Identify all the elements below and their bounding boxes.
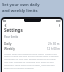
staticText: 2 h 30 m (48, 42, 60, 46)
staticText: Settings (4, 27, 23, 33)
button[interactable]: More options (57, 23, 61, 27)
staticText: Weekly (4, 47, 15, 51)
button[interactable]: Back (3, 23, 7, 27)
staticText: and weekly limits (2, 8, 38, 14)
button[interactable]: Weekly (2, 46, 62, 51)
staticText: 12 h 00 m (47, 47, 60, 51)
staticText: Daily (4, 42, 12, 46)
staticText: Limits help you balance your time. When … (4, 52, 59, 70)
button[interactable]: Daily (2, 41, 62, 46)
staticText: Set your own daily (2, 2, 40, 8)
staticText: Your limits (4, 35, 19, 39)
